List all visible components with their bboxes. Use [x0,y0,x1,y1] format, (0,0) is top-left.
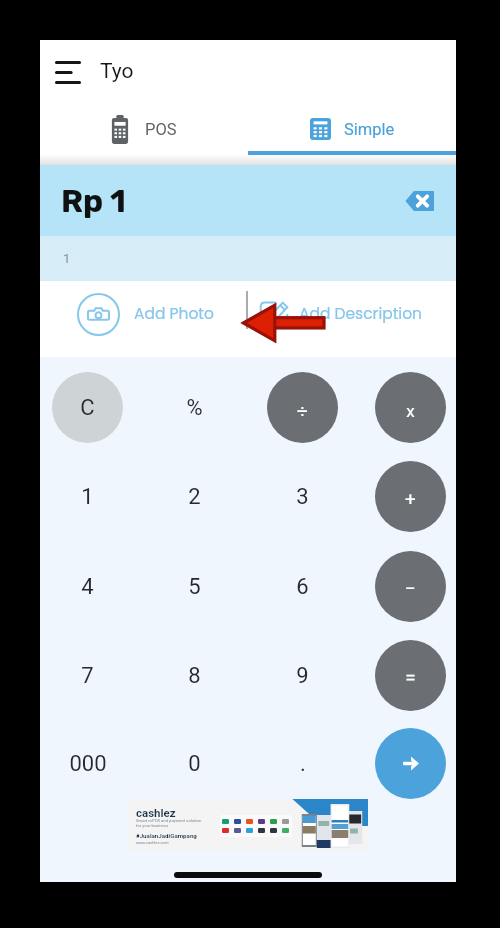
button[interactable]: 5 [159,551,230,622]
staticText: 3 [296,484,309,510]
staticText: 7 [81,663,94,689]
staticText: 1 [63,251,71,266]
staticText: % [186,395,203,421]
staticText: 000 [69,751,107,777]
button[interactable]: . [267,728,338,799]
staticText: Rp 1 [61,182,127,220]
button[interactable]: Equals [375,640,446,711]
staticText: POS [145,120,177,139]
staticText: 0 [188,751,201,777]
staticText: Tyo [100,59,134,84]
staticText: 6 [296,574,309,600]
staticText: − [405,577,416,599]
button[interactable]: 9 [267,640,338,711]
staticText: #JualanJadiGampang [136,832,197,839]
staticText: = [405,666,416,688]
staticText: + [405,488,416,510]
staticText: 2 [188,484,201,510]
button[interactable]: 2 [159,461,230,532]
button[interactable]: 4 [52,551,123,622]
button[interactable]: Plus [375,461,446,532]
staticText: . [300,751,306,777]
button[interactable]: 000 [52,728,123,799]
staticText: Smart mPOS and payment solution for your… [136,818,202,828]
staticText: 4 [81,574,94,600]
staticText: 9 [296,663,309,689]
button[interactable]: 8 [159,640,230,711]
button[interactable]: Submit [375,728,446,799]
staticText: www.cashlez.com [136,840,169,845]
staticText: 8 [188,663,201,689]
staticText: Simple [344,120,395,139]
button[interactable]: Menu [46,50,90,94]
button[interactable]: Divide [267,372,338,443]
staticText: 5 [188,574,201,600]
button[interactable]: Minus [375,551,446,622]
button[interactable]: Multiply [375,372,446,443]
button[interactable]: 3 [267,461,338,532]
button[interactable]: 1 [52,461,123,532]
button[interactable]: % [159,372,230,443]
button[interactable]: C [52,372,123,443]
button[interactable]: 0 [159,728,230,799]
button[interactable]: Advertisement [128,799,368,851]
staticText: x [406,401,415,421]
button[interactable]: 6 [267,551,338,622]
staticText: 1 [81,484,94,510]
staticText: Add Photo [134,303,214,325]
staticText: Add Description [299,303,422,325]
button[interactable]: Simple [248,103,456,155]
staticText: cashlez [136,806,176,819]
staticText: ÷ [297,400,308,422]
button[interactable]: Backspace [396,178,442,224]
staticText: C [80,395,95,421]
button[interactable]: 7 [52,640,123,711]
button[interactable]: POS [40,103,248,155]
